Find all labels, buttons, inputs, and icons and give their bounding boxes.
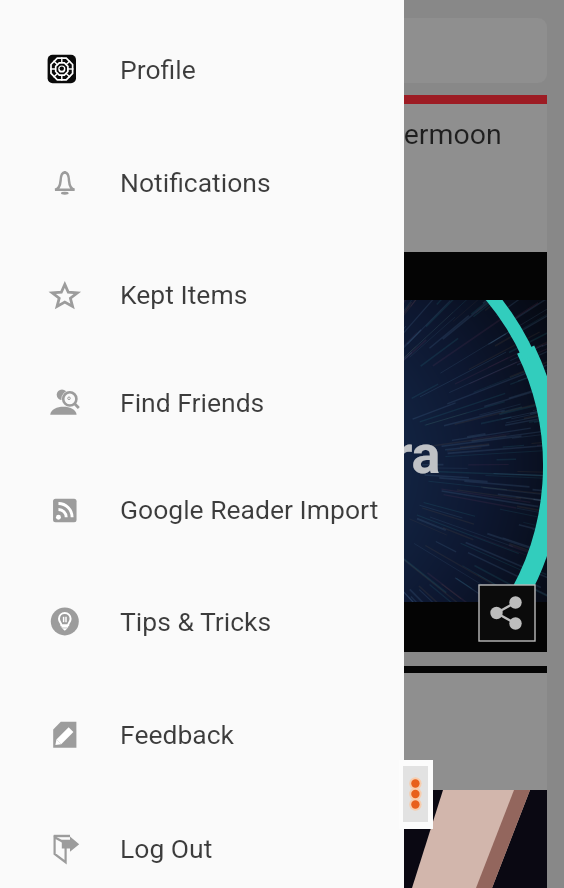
staticText: Aurora: [277, 423, 441, 486]
staticText: Profile: [120, 54, 196, 85]
button[interactable]: Google Reader Import: [0, 454, 404, 565]
button[interactable]: Tips & Tricks: [0, 566, 404, 677]
button[interactable]: Find Friends: [0, 347, 404, 458]
button[interactable]: Profile: [0, 14, 404, 125]
staticText: Tips & Tricks: [120, 606, 272, 637]
button[interactable]: Kept Items: [0, 239, 404, 350]
button[interactable]: Feedback: [0, 679, 404, 790]
button[interactable]: More options: [399, 760, 433, 829]
staticText: Google Reader Import: [120, 494, 379, 525]
staticText: Find Friends: [120, 387, 265, 418]
staticText: Tonight's supermoon: [236, 118, 502, 151]
staticText: Notifications: [120, 167, 271, 198]
button[interactable]: Notifications: [0, 127, 404, 238]
staticText: Log Out: [120, 833, 213, 864]
button[interactable]: Log Out: [0, 793, 404, 888]
staticText: Feedback: [120, 719, 235, 750]
staticText: Kept Items: [120, 279, 248, 310]
